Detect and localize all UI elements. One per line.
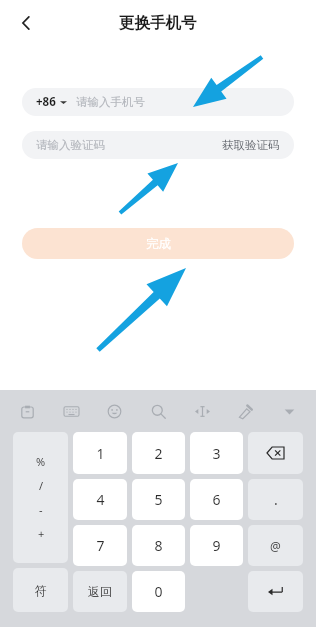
staticText: 6 — [212, 490, 221, 509]
staticText: 请输入手机号 — [76, 95, 145, 109]
button[interactable]: 4 — [73, 479, 127, 520]
staticText: . — [274, 490, 278, 509]
staticText: 3 — [212, 444, 221, 463]
button[interactable]: 6 — [190, 479, 243, 520]
button[interactable]: 3 — [190, 432, 243, 474]
button[interactable]: Enter — [248, 571, 303, 612]
staticText: +86 — [36, 94, 56, 110]
button[interactable]: . — [248, 479, 303, 520]
staticText: 2 — [154, 444, 163, 463]
button[interactable]: 2 — [132, 432, 185, 474]
staticText: 0 — [154, 582, 163, 601]
button[interactable]: Collapse — [276, 398, 302, 424]
button[interactable]: Clipboard — [14, 398, 40, 424]
staticText: 7 — [96, 536, 105, 555]
staticText: % — [36, 454, 46, 469]
staticText: 符 — [35, 583, 47, 598]
staticText: 完成 — [146, 236, 171, 252]
staticText: - — [39, 502, 43, 517]
button[interactable]: 完成 — [22, 228, 294, 259]
button[interactable]: 返回 — [73, 571, 127, 612]
button[interactable]: Back — [6, 3, 46, 43]
staticText: / — [39, 478, 44, 493]
button[interactable]: 5 — [132, 479, 185, 520]
staticText: 返回 — [88, 584, 112, 599]
button[interactable]: 8 — [132, 525, 185, 566]
staticText: 9 — [212, 536, 221, 555]
staticText: 8 — [154, 536, 163, 555]
button[interactable]: @ — [248, 525, 303, 566]
button[interactable]: 1 — [73, 432, 127, 474]
button[interactable] — [22, 131, 294, 159]
staticText: 5 — [154, 490, 163, 509]
staticText: + — [38, 526, 45, 541]
button[interactable]: 符 — [13, 568, 68, 612]
staticText: 1 — [96, 444, 105, 463]
button[interactable]: % — [13, 432, 68, 563]
staticText: 获取验证码 — [222, 138, 280, 152]
button[interactable]: Emoji — [101, 398, 127, 424]
staticText: 请输入验证码 — [36, 138, 105, 152]
button[interactable]: Move cursor — [189, 398, 215, 424]
staticText: 更换手机号 — [119, 13, 197, 33]
button[interactable]: Backspace — [248, 432, 303, 474]
button[interactable]: Keyboard — [58, 398, 84, 424]
button[interactable]: Search — [145, 398, 171, 424]
button[interactable]: 9 — [190, 525, 243, 566]
staticText: 4 — [96, 490, 105, 509]
button[interactable]: 0 — [132, 571, 185, 612]
button[interactable]: 7 — [73, 525, 127, 566]
button[interactable]: Theme — [232, 398, 258, 424]
button[interactable]: 获取验证码 — [208, 131, 294, 159]
staticText: @ — [270, 538, 281, 554]
button[interactable]: +86 — [22, 88, 294, 116]
